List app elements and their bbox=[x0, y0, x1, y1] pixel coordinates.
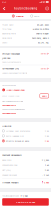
staticText: Seat A1 · +91 98765 43210 bbox=[2, 61, 21, 63]
button[interactable]: Select bbox=[41, 52, 49, 55]
button[interactable]: Select bbox=[41, 67, 49, 70]
staticText: ₹ 62 bbox=[45, 168, 49, 171]
staticText: Priority pickup at gate bbox=[6, 139, 29, 142]
staticText: Tech Park, Gate 2 bbox=[32, 37, 49, 39]
staticText: Indira Nagar bbox=[36, 32, 49, 35]
staticText: Routine Booking bbox=[13, 7, 37, 10]
staticText: Flat 10% off on your first ride bbox=[2, 100, 23, 103]
staticText: Apply Coupon Code bbox=[6, 88, 24, 91]
staticText: Enter coupon code bbox=[2, 94, 19, 97]
staticText: Add a co-passenger for this trip bbox=[2, 72, 27, 74]
staticText: Seats bbox=[2, 41, 7, 44]
staticText: USE CODE: WEEK20 bbox=[2, 112, 16, 115]
button[interactable]: Continue To Pay bbox=[2, 198, 49, 206]
staticText: 02 (A1, A2) bbox=[38, 41, 49, 44]
button[interactable]: Help bbox=[45, 4, 50, 13]
staticText: ₹ 1,160 bbox=[20, 194, 27, 197]
staticText: OFFERS & COUPONS bbox=[2, 84, 16, 86]
button[interactable]: Cycle bbox=[30, 13, 39, 19]
staticText: Save more on the weekly pass bbox=[2, 108, 25, 111]
staticText: ₹ 1,200 bbox=[42, 158, 49, 161]
staticText: Select bbox=[41, 67, 47, 70]
staticText: Apply bbox=[42, 94, 47, 97]
staticText: Trip Type bbox=[2, 28, 11, 30]
staticText: Boarding Point bbox=[2, 32, 16, 35]
button[interactable]: Back bbox=[1, 4, 6, 13]
staticText: Co-Passenger (01) bbox=[2, 67, 19, 70]
staticText: 29 Jan, 2024 bbox=[37, 23, 49, 26]
staticText: ₹ 40 bbox=[45, 163, 49, 166]
staticText: Select bbox=[41, 52, 47, 55]
button[interactable]: Extra luggage slot bbox=[2, 133, 49, 138]
button[interactable]: Apply bbox=[40, 94, 49, 98]
staticText: GST (5%) bbox=[2, 168, 11, 171]
staticText: Drop Point bbox=[2, 37, 12, 39]
button[interactable]: Priority pickup at gate bbox=[2, 138, 49, 143]
staticText: Convenience Fee bbox=[2, 163, 17, 166]
staticText: John Doe bbox=[2, 57, 10, 59]
button[interactable]: Oneway bbox=[12, 13, 23, 19]
staticText: Amount Payable bbox=[2, 181, 18, 184]
button[interactable]: % bbox=[2, 87, 49, 92]
staticText: ₹ 30 bbox=[45, 139, 49, 142]
staticText: Continue To Pay bbox=[16, 200, 35, 204]
staticText: 9:41 bbox=[2, 1, 6, 3]
staticText: Cycle bbox=[34, 14, 39, 18]
staticText: Travel Date bbox=[2, 23, 13, 26]
staticText: ? bbox=[47, 7, 48, 10]
staticText: Primary Passenger bbox=[2, 52, 20, 55]
button[interactable]: Window seat preference bbox=[2, 128, 49, 133]
staticText: ₹ 1,160 bbox=[42, 181, 49, 184]
staticText: ₹ 20 bbox=[45, 129, 49, 132]
staticText: Extra luggage slot bbox=[6, 134, 24, 137]
staticText: - ₹ 142 bbox=[42, 173, 49, 176]
staticText: Home to Office bbox=[33, 28, 49, 30]
staticText: Coupon Discount bbox=[2, 173, 17, 176]
staticText: Total Payable Amount bbox=[2, 194, 19, 197]
staticText: Oneway bbox=[15, 14, 23, 18]
staticText: Window seat preference bbox=[6, 129, 30, 132]
staticText: % bbox=[3, 89, 5, 91]
staticText: Payment Breakdown bbox=[2, 153, 21, 156]
staticText: ₹ 50 bbox=[45, 134, 49, 137]
staticText: Base Fare bbox=[2, 158, 11, 161]
staticText: Add-Ons bbox=[2, 124, 11, 127]
staticText: USE CODE: FIRST10 bbox=[2, 104, 16, 107]
